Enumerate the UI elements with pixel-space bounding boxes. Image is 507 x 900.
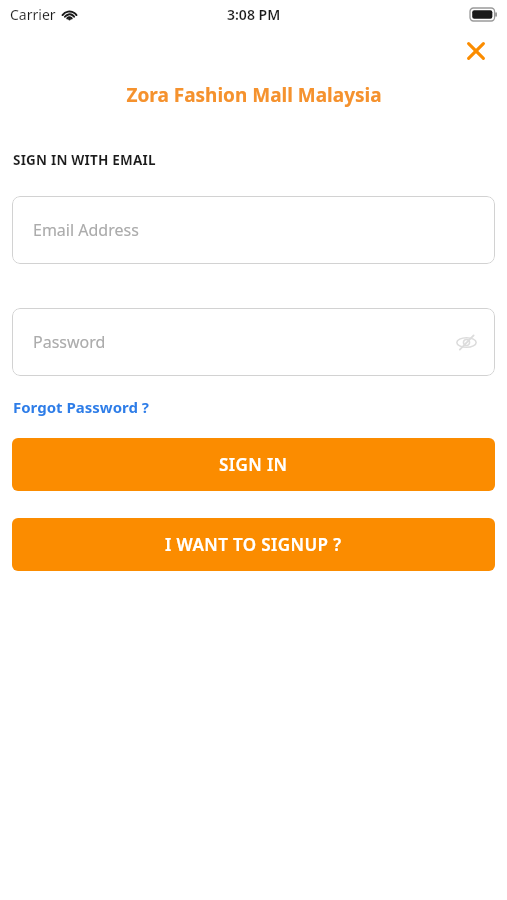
staticText: Zora Fashion Mall Malaysia <box>126 82 382 108</box>
staticText: 3:08 PM <box>227 5 281 24</box>
button[interactable]: Email Address <box>12 196 495 264</box>
staticText: Email Address <box>33 219 139 241</box>
button[interactable]: I WANT TO SIGNUP ? <box>12 518 495 571</box>
button[interactable]: SIGN IN <box>12 438 495 491</box>
button[interactable]: Close <box>461 36 491 66</box>
staticText: SIGN IN WITH EMAIL <box>13 151 156 169</box>
staticText: Forgot Password ? <box>13 397 149 417</box>
staticText: SIGN IN <box>219 453 288 476</box>
button[interactable]: Forgot Password ? <box>13 397 149 417</box>
staticText: Carrier <box>10 5 56 24</box>
button[interactable]: Show password <box>451 327 481 357</box>
staticText: I WANT TO SIGNUP ? <box>165 533 342 556</box>
staticText: Password <box>33 331 106 353</box>
button[interactable]: Password <box>12 308 495 376</box>
